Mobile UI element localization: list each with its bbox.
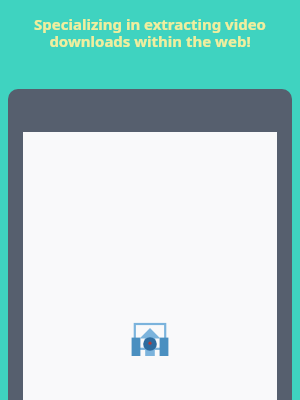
staticText: Specializing in extracting video downloa… [20,14,280,51]
